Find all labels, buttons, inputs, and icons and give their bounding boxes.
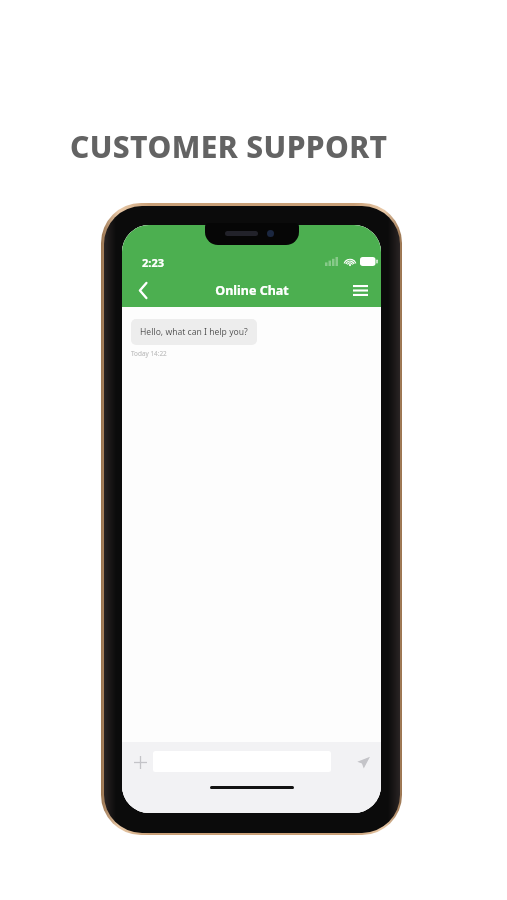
button[interactable]: Add attachment — [126, 747, 154, 777]
button[interactable]: Hello, what can I help you? — [131, 319, 257, 345]
button[interactable]: Menu — [343, 275, 377, 305]
button[interactable]: Back — [126, 275, 160, 305]
staticText: 2:23 — [142, 255, 164, 270]
staticText: Today 14:22 — [131, 349, 167, 358]
button[interactable]: Send — [350, 747, 376, 777]
staticText: CUSTOMER SUPPORT — [70, 126, 388, 167]
staticText: Online Chat — [215, 282, 289, 299]
staticText: Hello, what can I help you? — [140, 326, 248, 338]
